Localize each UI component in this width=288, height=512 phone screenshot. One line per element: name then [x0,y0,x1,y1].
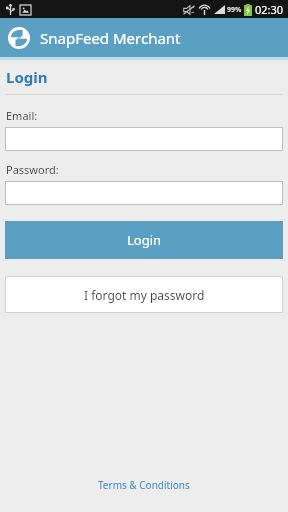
staticText: SnapFeed Merchant [40,28,181,48]
staticText: Login [6,67,48,87]
button[interactable]: I forgot my password [5,276,283,313]
button[interactable]: Email input field [5,127,283,151]
staticText: 02:30 [255,2,284,17]
staticText: Login [127,231,162,249]
staticText: Terms & Conditions [98,478,190,492]
button[interactable]: SnapFeed logo [7,26,31,50]
staticText: I forgot my password [84,287,205,303]
staticText: Email: [6,108,38,123]
button[interactable]: Terms & Conditions [90,475,198,495]
staticText: 99% [227,5,242,15]
button[interactable]: Password input field [5,181,283,205]
button[interactable]: Login [5,221,283,259]
staticText: Password: [6,162,59,177]
